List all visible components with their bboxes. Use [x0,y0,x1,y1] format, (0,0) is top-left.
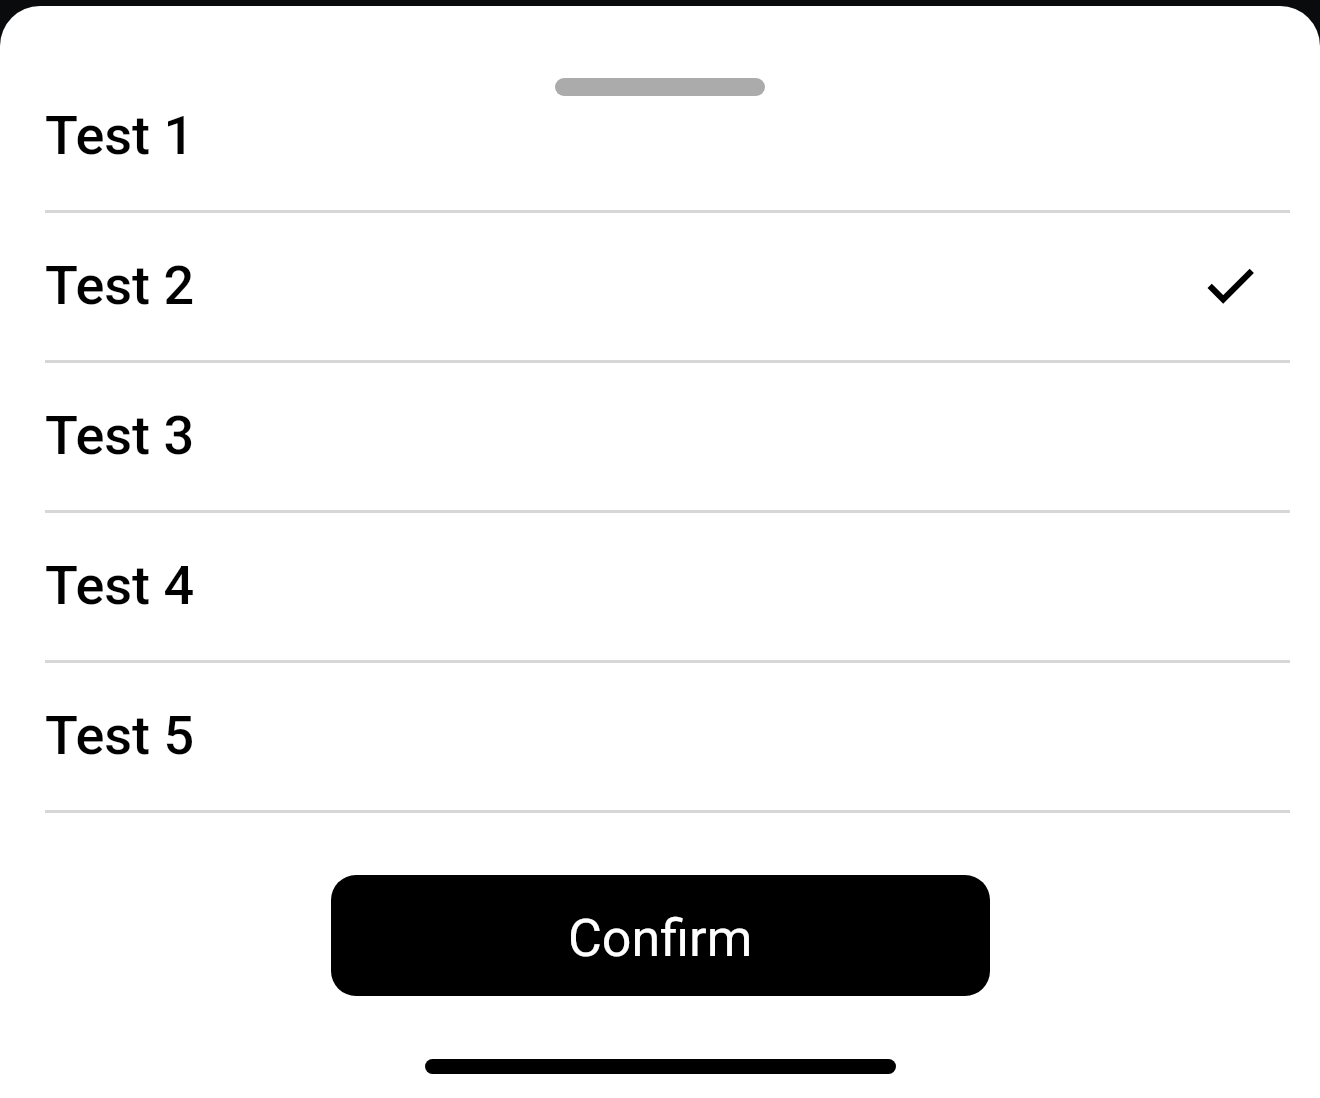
button[interactable]: Test 2 [0,213,1320,363]
button[interactable]: Test 1 [0,63,1320,213]
button[interactable]: Test 3 [0,363,1320,513]
staticText: Test 4 [45,554,195,617]
button[interactable]: Confirm [331,875,990,996]
staticText: Confirm [568,908,753,969]
staticText: Test 5 [45,704,195,767]
staticText: Test 3 [45,404,195,467]
button[interactable]: Test 4 [0,513,1320,663]
staticText: Test 2 [45,254,195,317]
button[interactable]: Test 5 [0,663,1320,813]
staticText: Test 1 [45,104,195,167]
other: Selected [1200,257,1260,317]
